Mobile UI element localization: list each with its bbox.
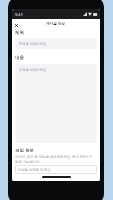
button[interactable]: 파일을 선택해 주세요. [15,165,97,174]
button[interactable]: 제목을 입력하세요 [15,38,97,49]
staticText: 게시글 작성 [46,21,65,26]
staticText: 파일을 선택해 주세요. [18,167,52,172]
staticText: 제목을 입력하세요 [19,41,47,46]
button[interactable]: 내용을 입력하세요 [15,64,97,143]
button[interactable]: Close [13,22,20,29]
staticText: 제목 [15,30,24,35]
staticText: 내용 [15,55,24,60]
staticText: 이미지, 문서 등 파일을 첨부해주세요. 최대 5개까지 등록 가능합니다. [15,154,92,164]
staticText: 9:41 [15,12,23,17]
staticText: 내용을 입력하세요 [19,67,47,72]
staticText: 파일 첨부 [15,147,34,152]
